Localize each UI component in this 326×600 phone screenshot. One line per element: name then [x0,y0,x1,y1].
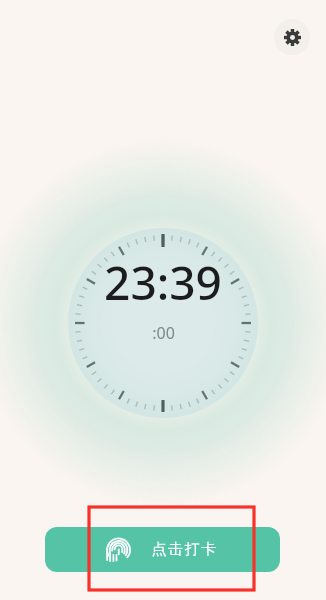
staticText: 点击打卡 [151,540,217,559]
staticText: 23:39 [104,251,222,314]
button[interactable]: Settings [274,19,310,55]
button[interactable]: 点击打卡 [45,527,280,572]
staticText: :00 [152,322,175,344]
